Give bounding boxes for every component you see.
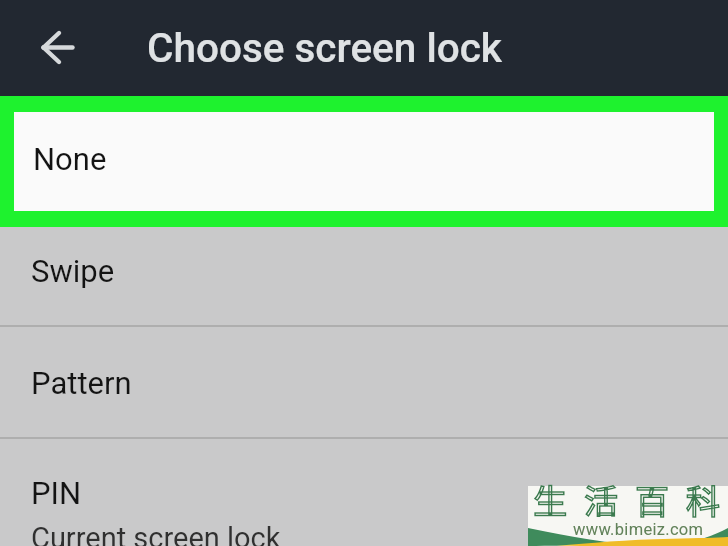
staticText: Pattern [31,365,132,401]
staticText: Swipe [31,253,115,289]
button[interactable]: Pattern [0,327,728,439]
staticText: Choose screen lock [147,24,502,71]
staticText: None [33,141,107,177]
staticText: 生活百科 [533,475,728,524]
staticText: PIN [31,475,82,511]
button[interactable]: None [14,112,714,211]
staticText: Current screen lock [31,521,281,546]
button[interactable]: Swipe [0,215,728,327]
staticText: www.bimeiz.com [573,520,704,539]
button[interactable]: PIN [0,439,728,546]
button[interactable]: Back [29,21,83,75]
